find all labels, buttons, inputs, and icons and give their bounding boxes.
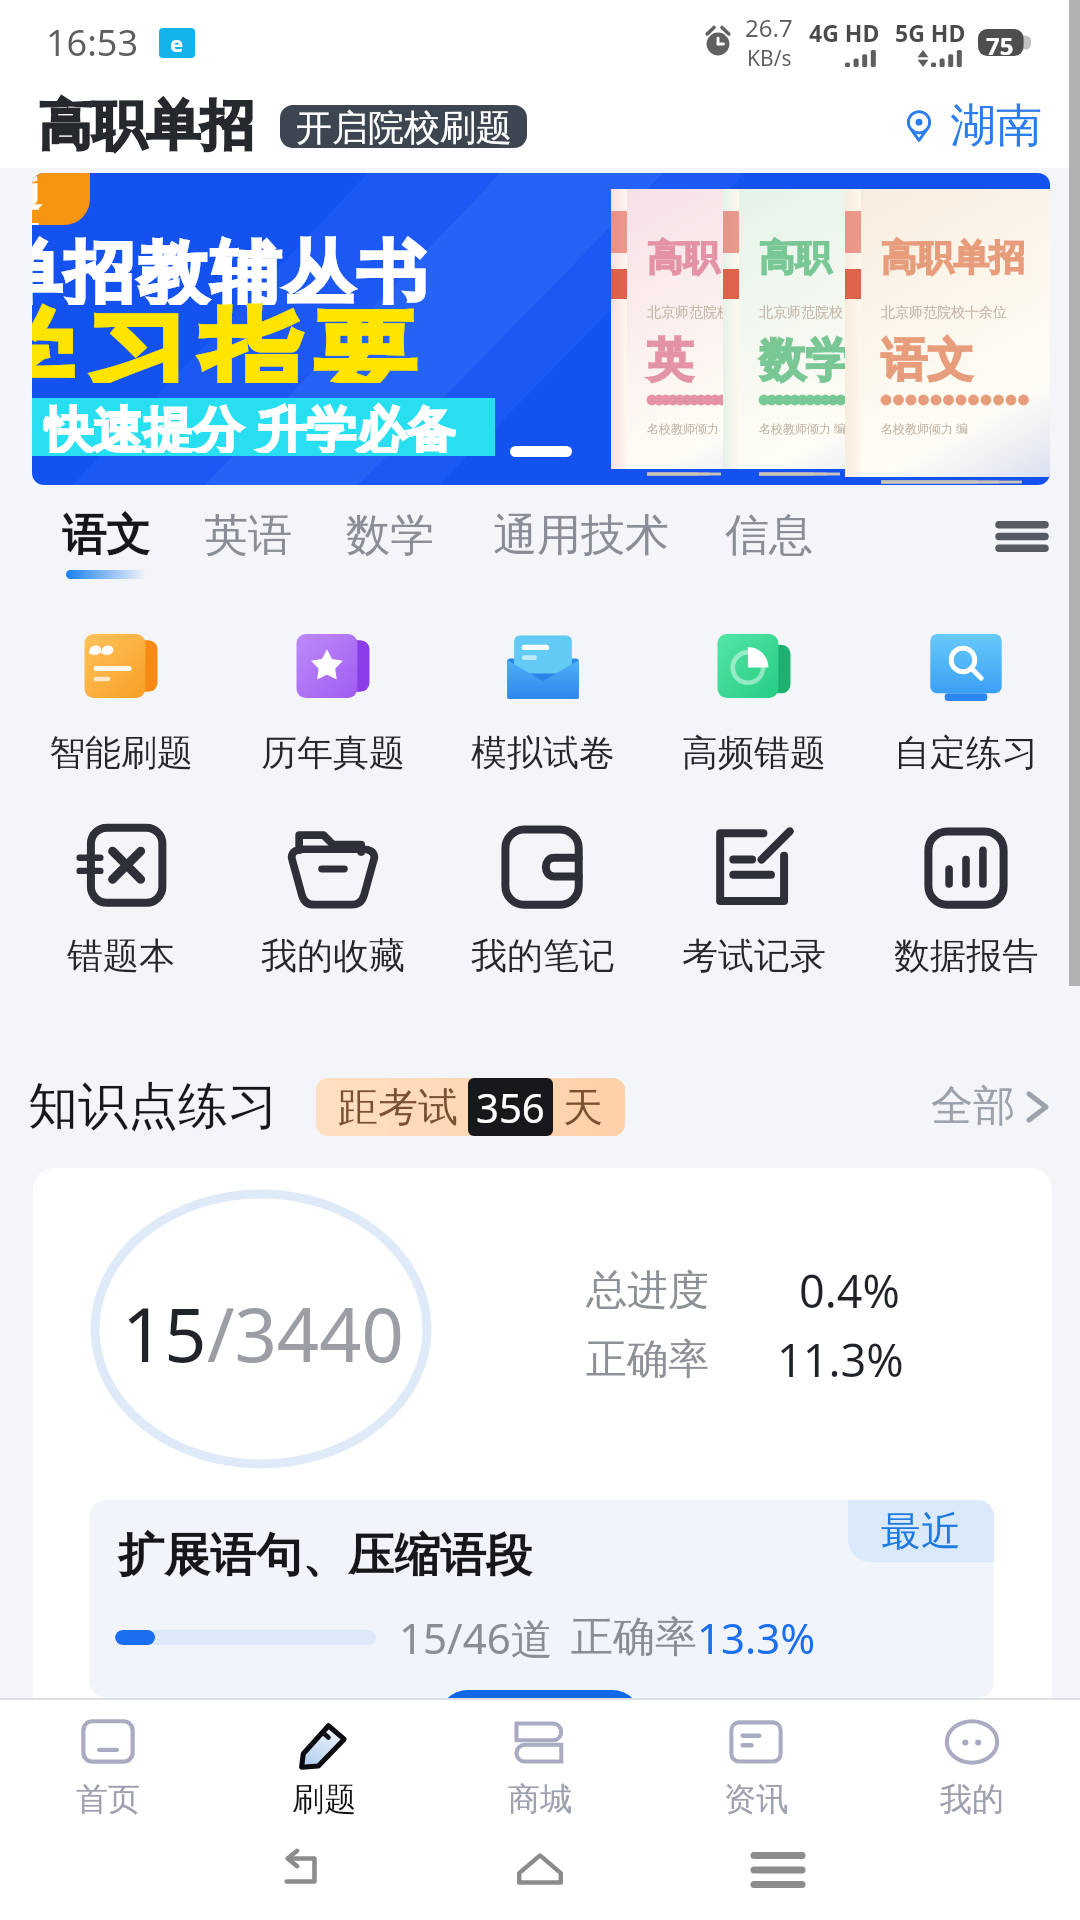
staticText: 总进度 xyxy=(586,1265,709,1317)
button[interactable]: 语文 xyxy=(46,498,166,592)
button[interactable]: 数据报告 xyxy=(866,812,1066,992)
staticText: 356 xyxy=(476,1080,545,1134)
staticText: 考试记录 xyxy=(682,933,826,978)
staticText: 知识点练习 xyxy=(28,1075,278,1138)
staticText: 湖南 xyxy=(950,97,1042,155)
button[interactable]: 我的收藏 xyxy=(233,812,433,992)
staticText: 通用技术 xyxy=(493,508,669,563)
button[interactable]: 15 xyxy=(33,1168,1052,1698)
staticText: 我的笔记 xyxy=(471,933,615,978)
staticText: 通用 xyxy=(32,173,64,225)
button[interactable]: Home xyxy=(502,1832,578,1908)
button[interactable]: 开启院校刷题 xyxy=(280,105,527,148)
button[interactable]: Back xyxy=(264,1832,340,1908)
staticText: 语文 xyxy=(62,508,150,563)
staticText: 错题本 xyxy=(67,933,175,978)
staticText: 高职单招学 xyxy=(647,235,731,280)
button[interactable]: 我的笔记 xyxy=(443,812,643,992)
staticText: 高职单招学 xyxy=(881,235,1050,280)
staticText: 75 xyxy=(986,29,1014,56)
staticText: 商城 xyxy=(508,1779,572,1819)
staticText: 15/46道 xyxy=(399,1609,553,1666)
staticText: 15 xyxy=(122,1283,207,1384)
staticText: 名校教师倾力 编 xyxy=(881,420,969,436)
staticText: 距考试 xyxy=(338,1082,458,1132)
staticText: 单招教辅丛书 xyxy=(32,231,428,305)
staticText: /3440 xyxy=(207,1283,404,1384)
button[interactable]: 通用 xyxy=(32,173,1050,485)
staticText: 北京师范院校十余位 xyxy=(759,304,851,322)
staticText: 4G HD xyxy=(809,17,880,48)
staticText: 我的 xyxy=(940,1779,1004,1819)
staticText: 高职单招学 xyxy=(759,235,851,280)
staticText: 智能刷题 xyxy=(49,730,193,775)
staticText: 正确率 xyxy=(571,1611,697,1664)
button[interactable]: 历年真题 xyxy=(233,618,433,798)
staticText: 26.7 xyxy=(745,11,793,44)
staticText: 数据报告 xyxy=(894,933,1038,978)
staticText: 13.3% xyxy=(697,1609,816,1666)
staticText: 数学 xyxy=(346,508,434,563)
button[interactable]: 资讯 xyxy=(648,1700,864,1820)
staticText: 名校教师倾力 编 xyxy=(759,420,847,436)
button[interactable]: 刷题 xyxy=(216,1700,432,1820)
staticText: 全部 xyxy=(931,1080,1015,1133)
button[interactable]: Recents xyxy=(740,1832,816,1908)
staticText: 语文 xyxy=(881,332,973,390)
staticText: 16:53 xyxy=(46,18,139,67)
staticText: 北京师范院校十余位 xyxy=(647,304,731,322)
button[interactable]: 智能刷题 xyxy=(21,618,221,798)
staticText: 英语 xyxy=(647,332,731,390)
button[interactable]: Start practice xyxy=(438,1690,642,1750)
staticText: 最近 xyxy=(881,1506,961,1556)
button[interactable]: 自定练习 xyxy=(866,618,1066,798)
staticText: 数学 xyxy=(759,332,851,390)
staticText: 高频错题 xyxy=(682,730,826,775)
staticText: 北京师范院校十余位 xyxy=(881,304,1007,322)
button[interactable]: 湖南 xyxy=(896,93,1046,159)
button[interactable]: 数学 xyxy=(330,498,450,592)
button[interactable]: 通用技术 xyxy=(477,498,685,592)
button[interactable]: 英语 xyxy=(188,498,308,592)
staticText: 扩展语句、压缩语段 xyxy=(118,1527,532,1585)
staticText: 5G HD xyxy=(895,17,966,48)
staticText: 模拟试卷 xyxy=(471,730,615,775)
button[interactable]: 商城 xyxy=(432,1700,648,1820)
staticText: KB/s xyxy=(747,44,792,73)
button[interactable]: 全部 xyxy=(925,1074,1052,1139)
staticText: 11.3% xyxy=(777,1329,904,1390)
staticText: 自定练习 xyxy=(894,730,1038,775)
button[interactable]: 最近 xyxy=(90,1500,994,1698)
button[interactable]: 考试记录 xyxy=(654,812,854,992)
staticText: 高职单招 xyxy=(38,92,254,160)
staticText: 正确率 xyxy=(586,1334,709,1386)
button[interactable]: 首页 xyxy=(0,1700,216,1820)
button[interactable]: More subjects xyxy=(990,504,1054,568)
button[interactable]: 模拟试卷 xyxy=(443,618,643,798)
staticText: 开启院校刷题 xyxy=(296,105,512,148)
button[interactable]: 我的 xyxy=(864,1700,1080,1820)
button[interactable]: 高频错题 xyxy=(654,618,854,798)
staticText: 信息 xyxy=(725,508,813,563)
staticText: 0.4% xyxy=(799,1260,900,1321)
staticText: e xyxy=(170,28,184,58)
staticText: 资讯 xyxy=(724,1779,788,1819)
button[interactable]: 信息 xyxy=(709,498,829,592)
button[interactable]: 错题本 xyxy=(21,812,221,992)
staticText: 名校教师倾力 编 xyxy=(647,420,731,436)
staticText: 学习指要 xyxy=(32,295,422,383)
staticText: 我的收藏 xyxy=(261,933,405,978)
staticText: 首页 xyxy=(76,1779,140,1819)
staticText: 历年真题 xyxy=(261,730,405,775)
staticText: 快速提分 升学必备 xyxy=(43,395,456,453)
staticText: 刷题 xyxy=(292,1779,356,1819)
staticText: 英语 xyxy=(204,508,292,563)
staticText: 天 xyxy=(563,1082,603,1132)
